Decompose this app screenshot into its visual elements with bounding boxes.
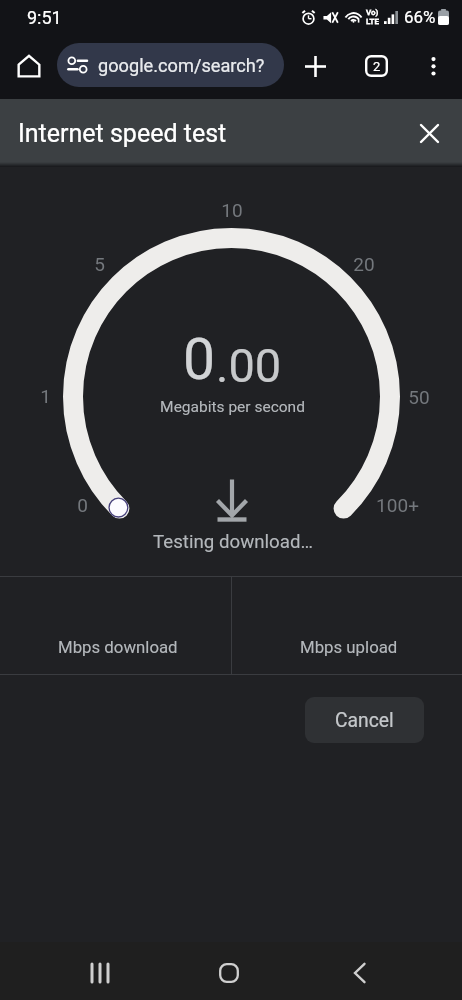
staticText: 10	[221, 199, 243, 221]
staticText: 9:51	[27, 7, 62, 28]
button[interactable]: New tab	[295, 46, 335, 86]
staticText: Vo)	[366, 8, 379, 17]
button[interactable]: Back	[329, 945, 389, 1000]
staticText: 66%	[404, 7, 436, 27]
button[interactable]: Home	[9, 46, 49, 86]
staticText: 5	[94, 253, 105, 275]
button[interactable]: Open tabs: 2	[356, 46, 396, 86]
staticText: Megabits per second	[160, 398, 305, 416]
staticText: 1	[40, 385, 51, 407]
staticText: .00	[216, 338, 282, 393]
staticText: LTE	[366, 17, 379, 26]
staticText: google.com/search?	[98, 55, 265, 76]
staticText: 0	[77, 494, 88, 516]
staticText: Internet speed test	[18, 119, 227, 148]
staticText: 2	[373, 59, 381, 74]
button[interactable]: Cancel	[305, 697, 424, 743]
button[interactable]: Close	[405, 109, 453, 157]
staticText: Mbps download	[58, 637, 178, 657]
button[interactable]: google.com/search?	[57, 43, 284, 87]
staticText: 0	[183, 326, 216, 393]
staticText: 100+	[376, 494, 419, 516]
button[interactable]: Mbps upload	[232, 577, 462, 674]
staticText: Testing download…	[153, 531, 313, 553]
staticText: 20	[353, 253, 375, 275]
button[interactable]: Home	[199, 945, 259, 1000]
staticText: 50	[408, 386, 430, 408]
button[interactable]: Recent apps	[70, 945, 130, 1000]
staticText: Cancel	[335, 709, 394, 732]
staticText: Mbps upload	[300, 637, 398, 657]
button[interactable]: Mbps download	[0, 577, 231, 674]
button[interactable]: More options	[413, 46, 453, 86]
